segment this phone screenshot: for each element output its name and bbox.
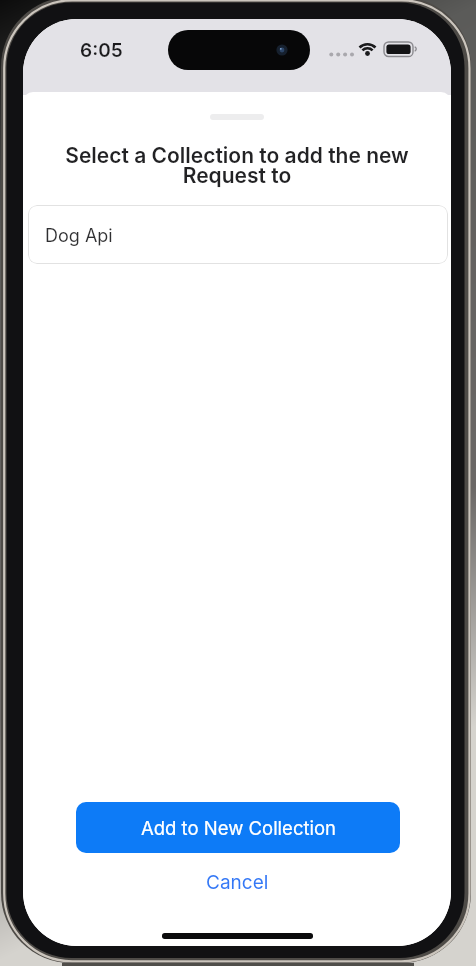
staticText: Select a Collection to add the new Reque… — [65, 143, 409, 188]
button[interactable]: Add to New Collection — [76, 802, 400, 853]
staticText: 6:05 — [80, 39, 123, 59]
button[interactable]: Cancel — [187, 860, 287, 904]
button[interactable]: Dog Api — [28, 205, 448, 264]
staticText: Add to New Collection — [141, 817, 336, 839]
staticText: Dog Api — [45, 225, 113, 247]
staticText: Cancel — [206, 871, 269, 894]
